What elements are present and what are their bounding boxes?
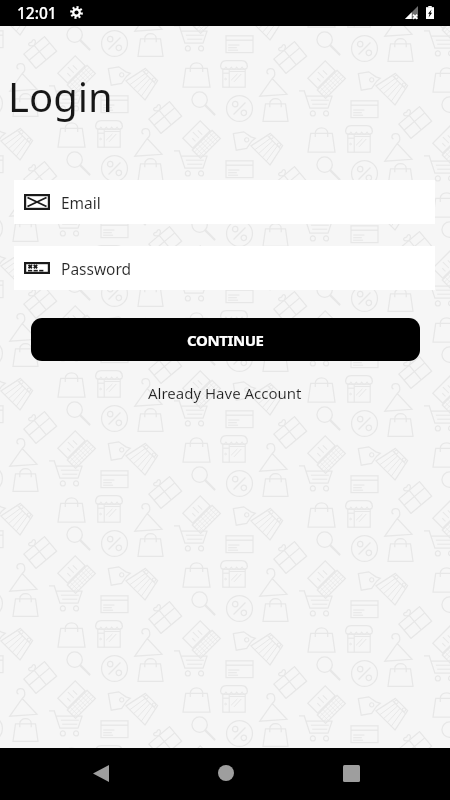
button[interactable]: Already Have Account bbox=[140, 377, 310, 409]
staticText: 12:01 bbox=[17, 2, 57, 23]
staticText: Password bbox=[61, 258, 132, 279]
staticText: CONTINUE bbox=[187, 330, 264, 350]
button[interactable]: Home bbox=[203, 750, 249, 796]
button[interactable]: Recent apps bbox=[328, 750, 374, 796]
button[interactable]: Email bbox=[14, 180, 435, 224]
staticText: Email bbox=[61, 192, 101, 213]
button[interactable]: Password bbox=[14, 246, 435, 290]
staticText: Login bbox=[8, 69, 113, 123]
button[interactable]: CONTINUE bbox=[31, 318, 420, 361]
button[interactable]: Back bbox=[78, 750, 124, 796]
